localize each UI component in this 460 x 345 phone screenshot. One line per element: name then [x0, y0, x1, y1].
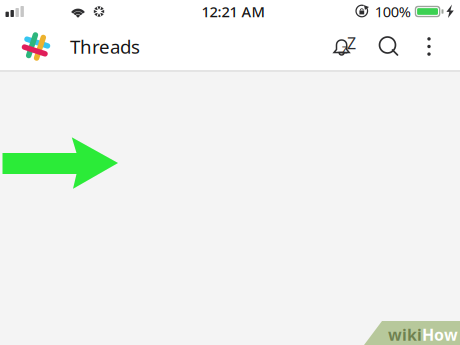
staticText: z [341, 39, 347, 57]
button[interactable]: Pause notifications [333, 33, 359, 59]
staticText: Threads [70, 34, 140, 59]
staticText: 12:21 AM [201, 2, 264, 21]
staticText: How [422, 324, 458, 345]
staticText: wiki [388, 324, 422, 345]
staticText: 100% [375, 2, 411, 21]
button[interactable]: More options [423, 34, 435, 58]
button[interactable]: Search [377, 34, 401, 58]
staticText: Z [347, 32, 356, 54]
